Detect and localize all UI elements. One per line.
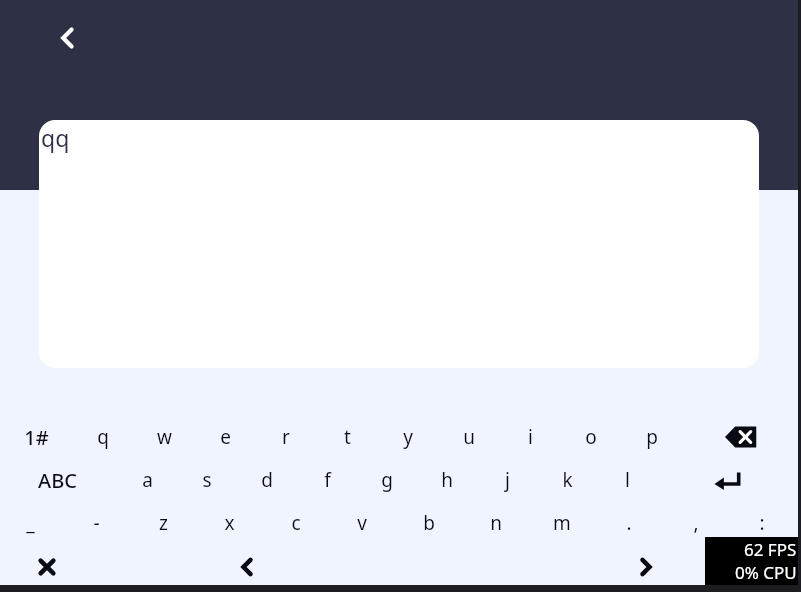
- button[interactable]: u: [438, 417, 500, 457]
- staticText: 62 FPS: [744, 538, 797, 561]
- staticText: -: [93, 510, 100, 536]
- staticText: .: [626, 510, 632, 536]
- staticText: ,: [693, 510, 699, 536]
- staticText: z: [159, 510, 168, 536]
- button[interactable]: k: [536, 460, 598, 500]
- button[interactable]: e: [194, 417, 256, 457]
- staticText: t: [344, 424, 351, 450]
- button[interactable]: ,: [665, 503, 727, 543]
- button[interactable]: 1#: [5, 417, 67, 457]
- staticText: i: [528, 424, 533, 450]
- staticText: o: [585, 424, 597, 450]
- button[interactable]: m: [531, 503, 593, 543]
- staticText: w: [157, 424, 172, 450]
- staticText: h: [441, 467, 453, 493]
- staticText: k: [562, 467, 573, 493]
- button[interactable]: d: [236, 460, 298, 500]
- staticText: y: [403, 424, 413, 450]
- button[interactable]: s: [176, 460, 238, 500]
- button[interactable]: qq: [39, 120, 759, 368]
- staticText: f: [324, 467, 331, 493]
- staticText: _: [26, 510, 35, 536]
- button[interactable]: l: [596, 460, 658, 500]
- button[interactable]: .: [598, 503, 660, 543]
- button[interactable]: f: [296, 460, 358, 500]
- button[interactable]: c: [265, 503, 327, 543]
- button[interactable]: n: [465, 503, 527, 543]
- staticText: d: [261, 467, 273, 493]
- button[interactable]: r: [255, 417, 317, 457]
- staticText: s: [202, 467, 212, 493]
- staticText: u: [463, 424, 475, 450]
- staticText: l: [625, 467, 630, 493]
- staticText: qq: [41, 122, 70, 153]
- button[interactable]: v: [331, 503, 393, 543]
- staticText: p: [646, 424, 658, 450]
- button[interactable]: -: [65, 503, 127, 543]
- button[interactable]: ABC: [26, 460, 88, 500]
- staticText: c: [291, 510, 301, 536]
- button[interactable]: _: [0, 503, 61, 543]
- staticText: g: [381, 467, 393, 493]
- staticText: 1#: [24, 424, 49, 451]
- button[interactable]: q: [72, 417, 134, 457]
- button[interactable]: Enter: [696, 460, 758, 500]
- button[interactable]: Close: [21, 545, 73, 589]
- staticText: :: [759, 510, 765, 536]
- button[interactable]: :: [731, 503, 793, 543]
- staticText: e: [220, 424, 231, 450]
- button[interactable]: t: [316, 417, 378, 457]
- button[interactable]: i: [499, 417, 561, 457]
- staticText: r: [282, 424, 290, 450]
- staticText: x: [224, 510, 235, 536]
- staticText: ABC: [38, 467, 77, 494]
- button[interactable]: j: [476, 460, 538, 500]
- button[interactable]: o: [560, 417, 622, 457]
- button[interactable]: z: [132, 503, 194, 543]
- staticText: n: [490, 510, 502, 536]
- button[interactable]: g: [356, 460, 418, 500]
- button[interactable]: a: [116, 460, 178, 500]
- button[interactable]: Next: [620, 545, 672, 589]
- button[interactable]: p: [621, 417, 683, 457]
- button[interactable]: Previous: [221, 545, 273, 589]
- staticText: q: [97, 424, 109, 450]
- button[interactable]: Backspace: [711, 417, 773, 457]
- staticText: j: [505, 467, 510, 493]
- staticText: 0% CPU: [735, 561, 797, 584]
- staticText: a: [142, 467, 153, 493]
- button[interactable]: w: [133, 417, 195, 457]
- button[interactable]: y: [377, 417, 439, 457]
- staticText: m: [553, 510, 571, 536]
- button[interactable]: b: [398, 503, 460, 543]
- staticText: b: [423, 510, 435, 536]
- button[interactable]: x: [198, 503, 260, 543]
- staticText: v: [357, 510, 367, 536]
- button[interactable]: Back: [44, 14, 92, 62]
- button[interactable]: h: [416, 460, 478, 500]
